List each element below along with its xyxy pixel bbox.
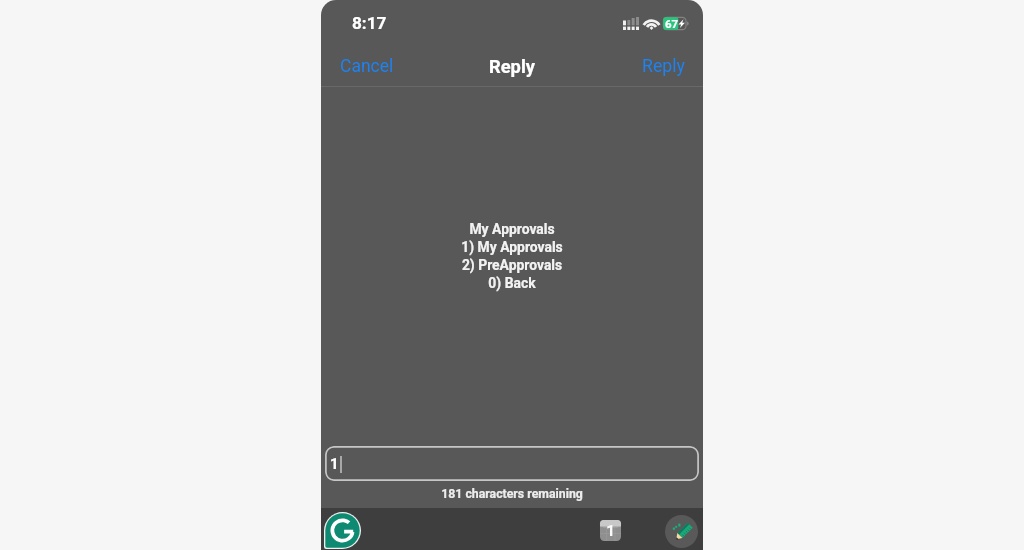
staticText: Reply — [489, 56, 535, 77]
button[interactable]: Grammarly — [323, 511, 361, 549]
staticText: 8:17 — [352, 13, 387, 33]
staticText: 181 characters remaining — [321, 487, 703, 501]
staticText: 1 — [600, 522, 621, 543]
button[interactable]: Grammarly assistant — [665, 515, 698, 548]
button[interactable]: 1 — [325, 446, 699, 481]
button[interactable]: Calendar — [600, 520, 621, 541]
button[interactable]: Reply — [624, 48, 703, 85]
button[interactable]: Cancel — [321, 48, 413, 85]
staticText: 1 — [330, 455, 339, 473]
staticText: Cancel — [340, 56, 394, 77]
staticText: My Approvals 1) My Approvals 2) PreAppro… — [321, 221, 703, 292]
staticText: 67 — [665, 17, 679, 30]
staticText: Reply — [642, 56, 685, 77]
